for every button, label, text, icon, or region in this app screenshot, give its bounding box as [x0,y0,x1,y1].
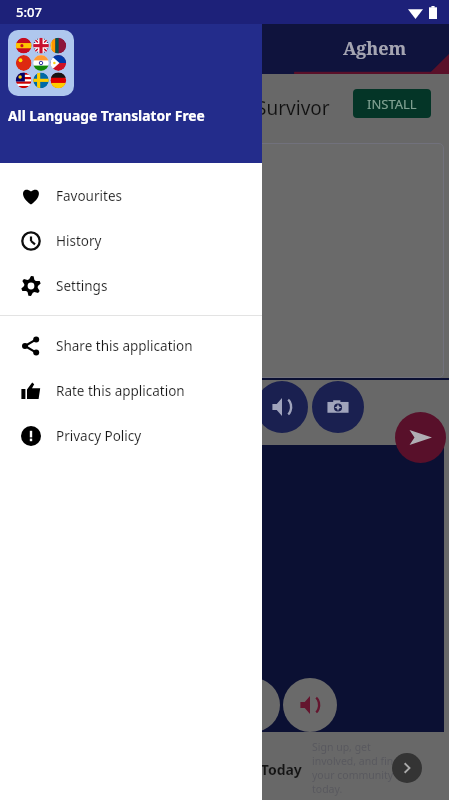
button[interactable]: Privacy Policy [0,413,262,458]
button[interactable]: Rate this application [0,368,262,413]
button[interactable]: Share this application [0,323,262,368]
staticText: Sign up, get involved, and find your com… [312,740,400,796]
staticText: Aghem [343,36,407,61]
staticText: Share this application [56,337,193,355]
staticText: INSTALL [367,95,417,113]
staticText: Wild Survivor [212,95,330,121]
button[interactable]: Translate [395,412,446,463]
staticText: History [56,232,102,250]
staticText: All Language Translator Free [8,106,205,125]
staticText: Favourites [56,187,122,205]
button[interactable]: Speak translation [283,678,337,732]
staticText: Rate this application [56,382,185,400]
button[interactable]: Camera translate [312,381,364,433]
staticText: Join Rock Today [193,760,302,779]
button[interactable]: Open navigation menu [14,37,38,61]
button[interactable]: Speak source text [256,381,308,433]
staticText: 5:07 [16,3,42,21]
button[interactable]: Open advertisement [392,753,422,783]
button[interactable]: Settings [0,263,262,308]
button[interactable]: INSTALL [353,89,431,118]
button[interactable]: Favourites [0,173,262,218]
button[interactable]: Copy translation [226,678,280,732]
button[interactable]: History [0,218,262,263]
staticText: Privacy Policy [56,427,142,445]
staticText: Settings [56,277,108,295]
